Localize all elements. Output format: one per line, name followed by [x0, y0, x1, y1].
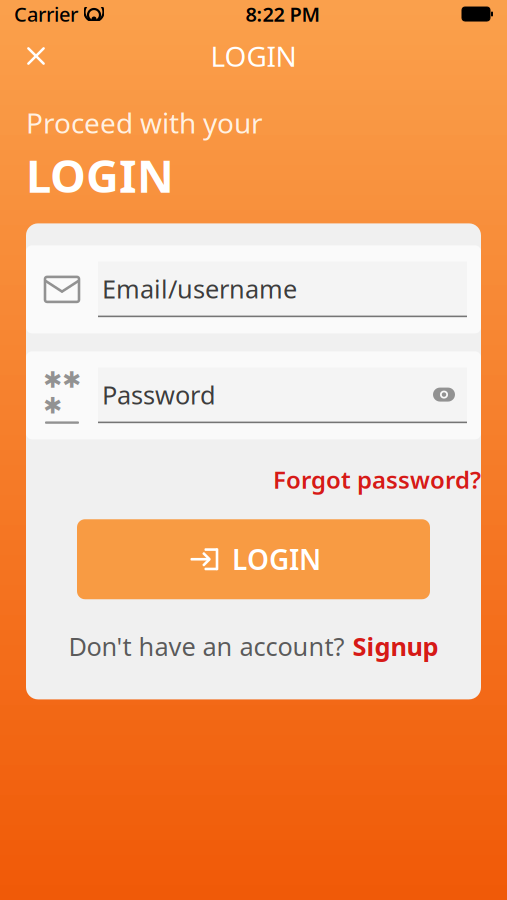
staticText: Don't have an account? — [68, 629, 344, 663]
staticText: LOGIN — [232, 541, 321, 578]
staticText: Password — [102, 378, 216, 411]
staticText: Signup — [352, 629, 438, 663]
button[interactable]: Close — [14, 34, 58, 78]
button[interactable]: Forgot password? — [273, 457, 481, 501]
staticText: LOGIN — [26, 145, 174, 205]
staticText: LOGIN — [210, 37, 296, 75]
staticText: 8:22 PM — [245, 1, 320, 27]
staticText: Proceed with your — [26, 104, 263, 141]
button[interactable]: Show password — [425, 379, 463, 411]
button[interactable]: LOGIN — [77, 519, 430, 599]
staticText: ✱✱✱ — [43, 367, 81, 418]
staticText: Forgot password? — [273, 463, 481, 495]
staticText: Email/username — [102, 272, 297, 305]
button[interactable]: Signup — [352, 629, 438, 663]
staticText: Carrier — [14, 1, 78, 27]
